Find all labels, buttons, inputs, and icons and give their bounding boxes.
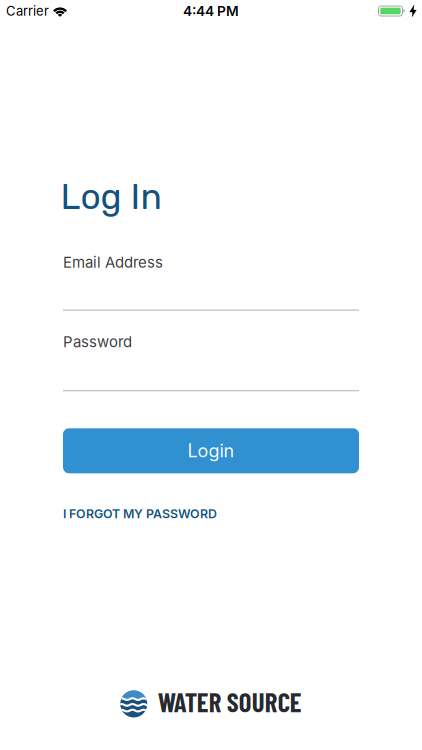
staticText: 4:44 PM bbox=[183, 3, 239, 19]
staticText: I FORGOT MY PASSWORD bbox=[63, 506, 217, 521]
staticText: WATER SOURCE bbox=[158, 685, 302, 717]
staticText: Email Address bbox=[63, 253, 163, 271]
button[interactable]: I FORGOT MY PASSWORD bbox=[63, 506, 217, 521]
staticText: Password bbox=[63, 333, 132, 351]
staticText: Login bbox=[187, 440, 234, 462]
staticText: Carrier bbox=[6, 3, 49, 19]
button[interactable]: Login bbox=[63, 428, 359, 473]
staticText: Log In bbox=[60, 176, 161, 218]
